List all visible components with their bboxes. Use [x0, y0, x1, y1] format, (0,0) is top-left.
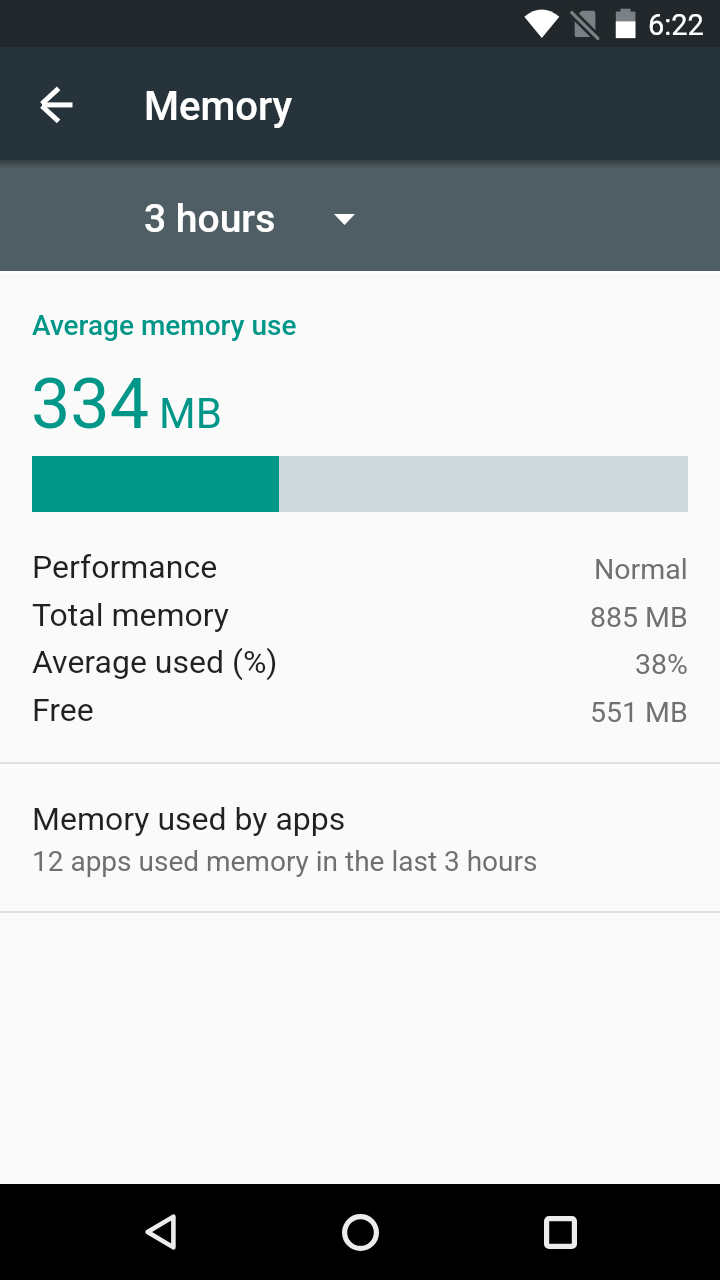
button[interactable]: Back [112, 1184, 208, 1280]
button[interactable]: 3 hours [144, 196, 355, 242]
staticText: 885 MB [590, 601, 688, 634]
staticText: Normal [594, 553, 688, 586]
staticText: Memory [144, 83, 293, 130]
staticText: Total memory [32, 596, 229, 634]
button[interactable]: Recent apps [512, 1184, 608, 1280]
staticText: 3 hours [144, 196, 276, 242]
staticText: 334 [31, 363, 150, 445]
staticText: Average used (%) [32, 643, 278, 681]
staticText: 38% [635, 648, 688, 681]
staticText: Average memory use [32, 309, 297, 342]
staticText: 12 apps used memory in the last 3 hours [32, 845, 538, 878]
button[interactable]: Total memory [0, 591, 720, 638]
staticText: Free [32, 691, 94, 729]
staticText: 551 MB [590, 696, 688, 729]
staticText: Performance [32, 548, 218, 586]
button[interactable]: Home [312, 1184, 408, 1280]
button[interactable]: Memory used by apps [0, 764, 720, 911]
button[interactable]: Free [0, 686, 720, 733]
staticText: 6:22 [648, 8, 704, 42]
staticText: Memory used by apps [32, 800, 346, 838]
button[interactable]: Performance [0, 543, 720, 590]
button[interactable]: Average used (%) [0, 638, 720, 685]
button[interactable]: Navigate up [16, 64, 96, 144]
staticText: MB [159, 389, 222, 438]
